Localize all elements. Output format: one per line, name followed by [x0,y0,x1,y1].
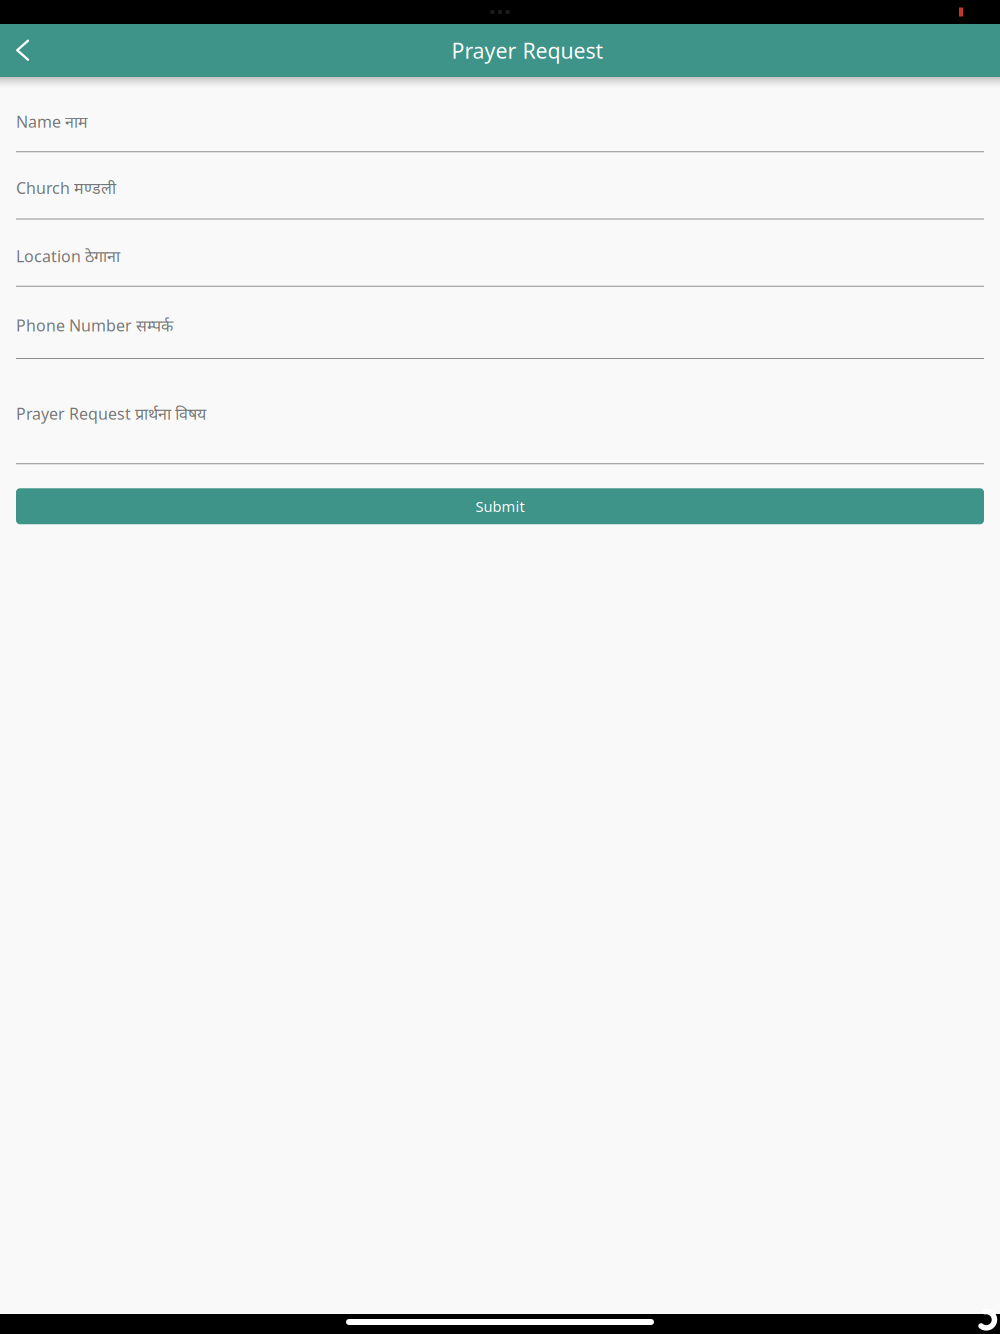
staticText: Name नाम [16,111,88,132]
staticText: Prayer Request प्रार्थना विषय [16,403,206,424]
staticText: Prayer Request [451,36,603,65]
staticText: Phone Number सम्पर्क [16,315,173,336]
staticText: Church मण्डली [16,177,116,198]
button[interactable]: Prayer Request प्रार्थना विषय [16,359,984,464]
staticText: Submit [475,496,524,516]
button[interactable]: Name नाम [16,90,984,152]
staticText: Location ठेगाना [16,245,120,267]
button[interactable]: Church मण्डली [16,152,984,219]
button[interactable]: Submit [16,488,984,524]
button[interactable]: Phone Number सम्पर्क [16,287,984,359]
button[interactable]: Back [0,24,55,77]
button[interactable]: Location ठेगाना [16,219,984,287]
